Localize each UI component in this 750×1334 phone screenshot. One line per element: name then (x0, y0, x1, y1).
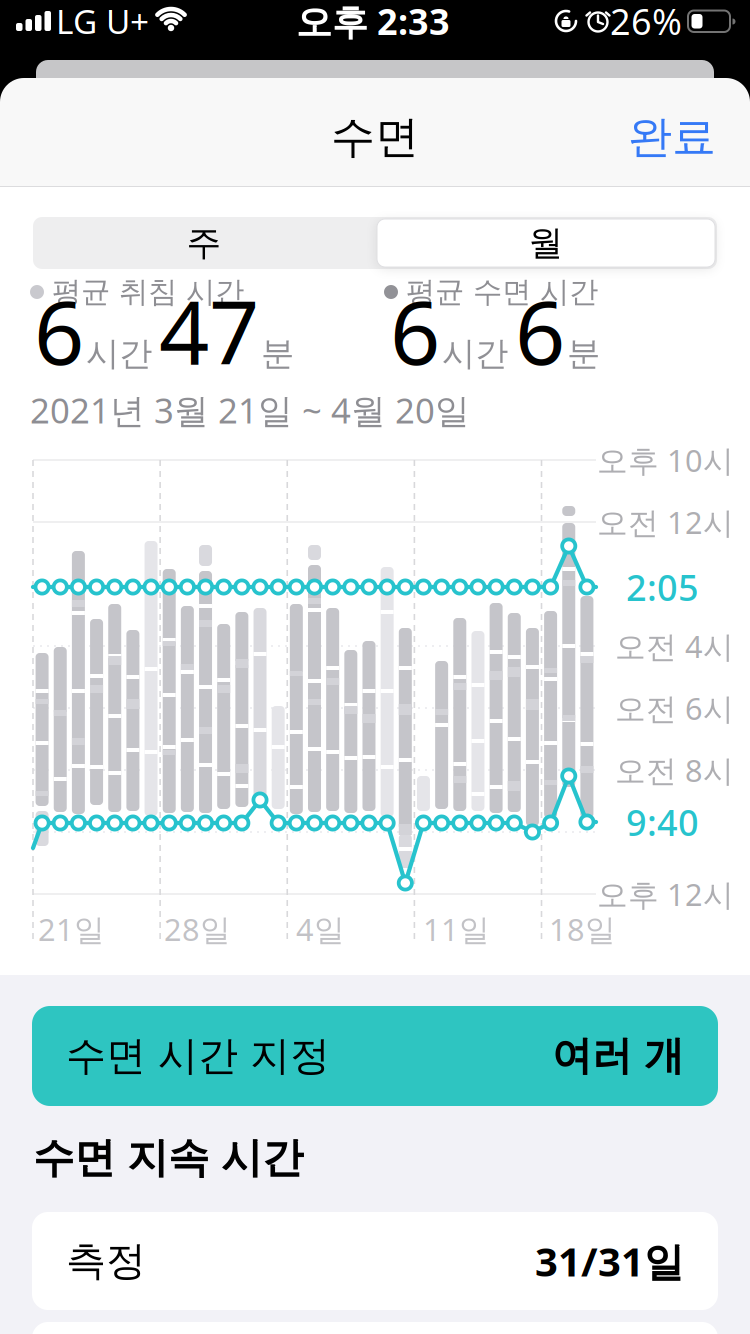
staticText: 오전 8시 (615, 750, 734, 790)
staticText: 오후 12시 (597, 874, 734, 914)
staticText: 수면 시간 지정 (66, 1031, 330, 1080)
staticText: 21일 (38, 909, 105, 949)
staticText: 6 (515, 272, 565, 389)
staticText: 평균 수면 시간 (406, 274, 598, 310)
staticText: 4일 (296, 909, 345, 949)
staticText: 주 (186, 222, 221, 264)
staticText: 6 (390, 272, 440, 389)
staticText: 시간 (442, 333, 508, 374)
staticText: 평균 취침 시간 (52, 274, 244, 310)
button[interactable]: 수면 시간 지정 (32, 1006, 718, 1106)
staticText: 31/31일 (535, 1234, 684, 1287)
staticText: 측정 (66, 1236, 146, 1285)
staticText: 완료 (628, 110, 716, 164)
staticText: 26% (610, 0, 682, 45)
staticText: 오후 2:33 (296, 0, 450, 45)
staticText: 오전 6시 (615, 688, 734, 728)
staticText: 2021년 3월 21일 ~ 4월 20일 (30, 387, 470, 433)
staticText: 6 (34, 272, 84, 389)
staticText: 분 (567, 333, 600, 374)
staticText: 2:05 (626, 563, 699, 611)
button[interactable]: 완료 (596, 107, 716, 167)
button[interactable]: 월 (375, 217, 717, 269)
staticText: 오전 4시 (615, 626, 734, 666)
staticText: 시간 (86, 333, 152, 374)
staticText: 18일 (549, 909, 616, 949)
staticText: 9:40 (626, 798, 699, 846)
staticText: 수면 지속 시간 (33, 1133, 303, 1183)
staticText: 오전 12시 (597, 502, 734, 542)
staticText: 28일 (164, 909, 231, 949)
staticText: 47 (159, 272, 259, 389)
staticText: 11일 (423, 909, 490, 949)
button[interactable]: 주 (33, 217, 375, 269)
staticText: 수면 (331, 110, 419, 164)
staticText: 분 (261, 333, 294, 374)
staticText: 월 (528, 222, 563, 264)
staticText: 여러 개 (552, 1031, 684, 1080)
staticText: LG U+ (56, 0, 149, 43)
staticText: 오후 10시 (597, 440, 734, 480)
